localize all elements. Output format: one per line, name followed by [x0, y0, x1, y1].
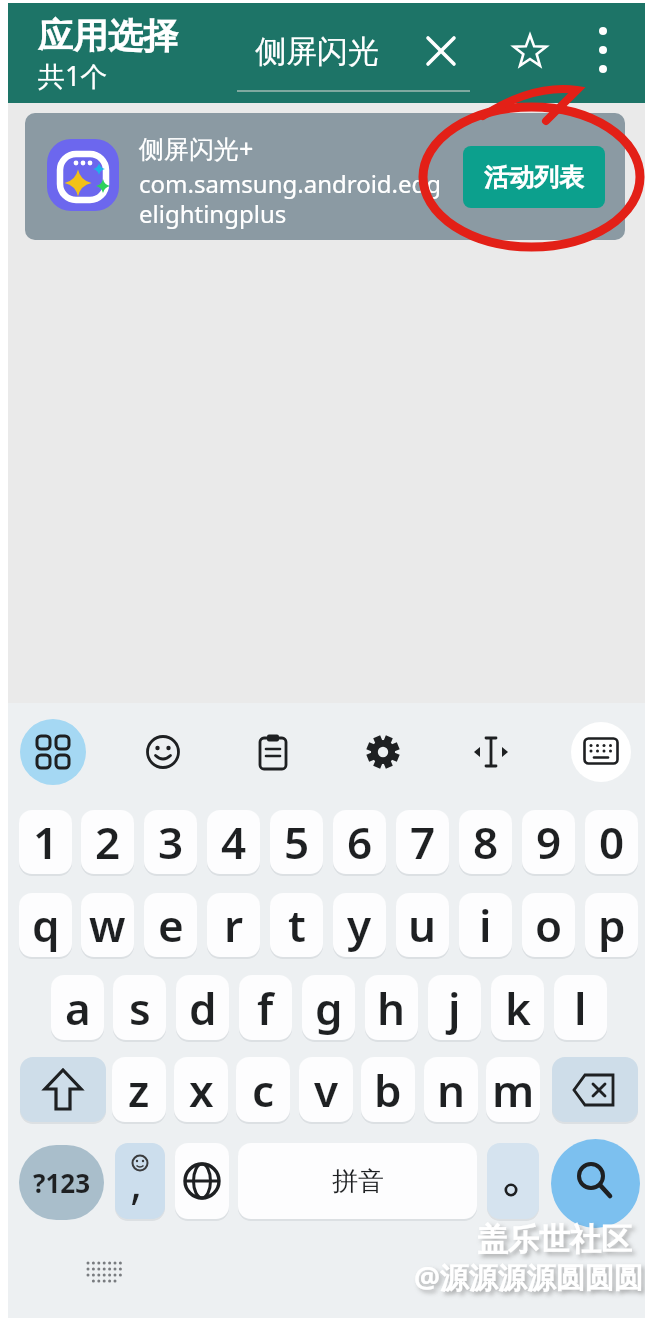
- staticText: com.samsung.android.edg: [139, 167, 442, 200]
- staticText: elightingplus: [139, 197, 287, 230]
- button[interactable]: d: [176, 975, 229, 1040]
- button[interactable]: [20, 1057, 106, 1122]
- button[interactable]: u: [396, 893, 449, 957]
- staticText: 共1个: [38, 57, 108, 94]
- button[interactable]: g: [302, 975, 355, 1040]
- button[interactable]: x: [174, 1057, 228, 1122]
- staticText: b: [374, 1060, 402, 1120]
- button[interactable]: h: [365, 975, 418, 1040]
- staticText: @源源源源圆圆圆: [414, 1257, 644, 1297]
- staticText: i: [479, 895, 492, 955]
- button[interactable]: [115, 1143, 165, 1219]
- button[interactable]: v: [299, 1057, 353, 1122]
- button[interactable]: 活动列表: [463, 146, 605, 208]
- button[interactable]: y: [333, 893, 386, 957]
- button[interactable]: [145, 734, 181, 770]
- button[interactable]: [256, 733, 290, 771]
- button[interactable]: 9: [522, 810, 575, 874]
- button[interactable]: [473, 735, 509, 769]
- staticText: 2: [95, 812, 121, 872]
- staticText: 侧屏闪光: [255, 32, 379, 71]
- button[interactable]: f: [239, 975, 292, 1040]
- button[interactable]: ?123: [19, 1145, 104, 1220]
- button[interactable]: 1: [19, 810, 72, 874]
- staticText: 1: [33, 812, 59, 872]
- button[interactable]: [364, 733, 402, 771]
- button[interactable]: i: [459, 893, 512, 957]
- staticText: 侧屏闪光+: [139, 131, 254, 165]
- button[interactable]: w: [81, 893, 134, 957]
- staticText: r: [224, 895, 244, 955]
- button[interactable]: q: [19, 893, 72, 957]
- button[interactable]: [175, 1143, 229, 1219]
- staticText: e: [158, 895, 184, 955]
- button[interactable]: z: [112, 1057, 166, 1122]
- staticText: j: [448, 978, 461, 1038]
- staticText: 拼音: [332, 1165, 384, 1198]
- staticText: 应用选择: [38, 14, 178, 58]
- button[interactable]: 7: [396, 810, 449, 874]
- button[interactable]: c: [236, 1057, 290, 1122]
- button[interactable]: 8: [459, 810, 512, 874]
- button[interactable]: [487, 1143, 539, 1219]
- button[interactable]: k: [491, 975, 544, 1040]
- button[interactable]: 侧屏闪光: [250, 30, 384, 72]
- staticText: a: [65, 978, 91, 1038]
- staticText: ,: [130, 1150, 143, 1213]
- staticText: h: [377, 978, 406, 1038]
- button[interactable]: e: [144, 893, 197, 957]
- staticText: 8: [473, 812, 499, 872]
- button[interactable]: o: [522, 893, 575, 957]
- staticText: 3: [158, 812, 184, 872]
- button[interactable]: 0: [585, 810, 638, 874]
- staticText: 6: [347, 812, 373, 872]
- staticText: 5: [284, 812, 310, 872]
- button[interactable]: 2: [81, 810, 134, 874]
- button[interactable]: r: [207, 893, 260, 957]
- button[interactable]: 4: [207, 810, 260, 874]
- button[interactable]: p: [585, 893, 638, 957]
- button[interactable]: m: [486, 1057, 540, 1122]
- staticText: 7: [410, 812, 436, 872]
- button[interactable]: [512, 33, 548, 69]
- staticText: x: [189, 1060, 214, 1120]
- staticText: 盖乐世社区: [477, 1220, 632, 1259]
- button[interactable]: n: [424, 1057, 478, 1122]
- staticText: v: [314, 1060, 339, 1120]
- button[interactable]: 拼音: [238, 1143, 477, 1219]
- button[interactable]: [84, 1258, 124, 1288]
- button[interactable]: 6: [333, 810, 386, 874]
- staticText: 9: [536, 812, 562, 872]
- button[interactable]: [20, 719, 86, 785]
- staticText: m: [492, 1060, 535, 1120]
- button[interactable]: t: [270, 893, 323, 957]
- button[interactable]: [25, 113, 625, 240]
- staticText: d: [189, 978, 217, 1038]
- staticText: g: [315, 978, 343, 1038]
- button[interactable]: 3: [144, 810, 197, 874]
- staticText: c: [252, 1060, 275, 1120]
- button[interactable]: a: [51, 975, 104, 1040]
- button[interactable]: [590, 25, 616, 77]
- staticText: q: [32, 895, 60, 955]
- staticText: l: [574, 978, 587, 1038]
- button[interactable]: [426, 36, 456, 66]
- staticText: n: [437, 1060, 466, 1120]
- button[interactable]: j: [428, 975, 481, 1040]
- staticText: ?123: [33, 1165, 91, 1200]
- button[interactable]: b: [361, 1057, 415, 1122]
- button[interactable]: s: [113, 975, 166, 1040]
- staticText: y: [347, 895, 372, 955]
- staticText: 活动列表: [484, 162, 584, 193]
- staticText: p: [598, 895, 626, 955]
- staticText: s: [129, 978, 151, 1038]
- staticText: z: [128, 1060, 150, 1120]
- button[interactable]: [551, 1139, 640, 1228]
- staticText: t: [288, 895, 306, 955]
- button[interactable]: l: [554, 975, 607, 1040]
- staticText: f: [257, 978, 274, 1038]
- button[interactable]: [552, 1057, 638, 1122]
- button[interactable]: [571, 722, 631, 782]
- staticText: k: [505, 978, 531, 1038]
- button[interactable]: 5: [270, 810, 323, 874]
